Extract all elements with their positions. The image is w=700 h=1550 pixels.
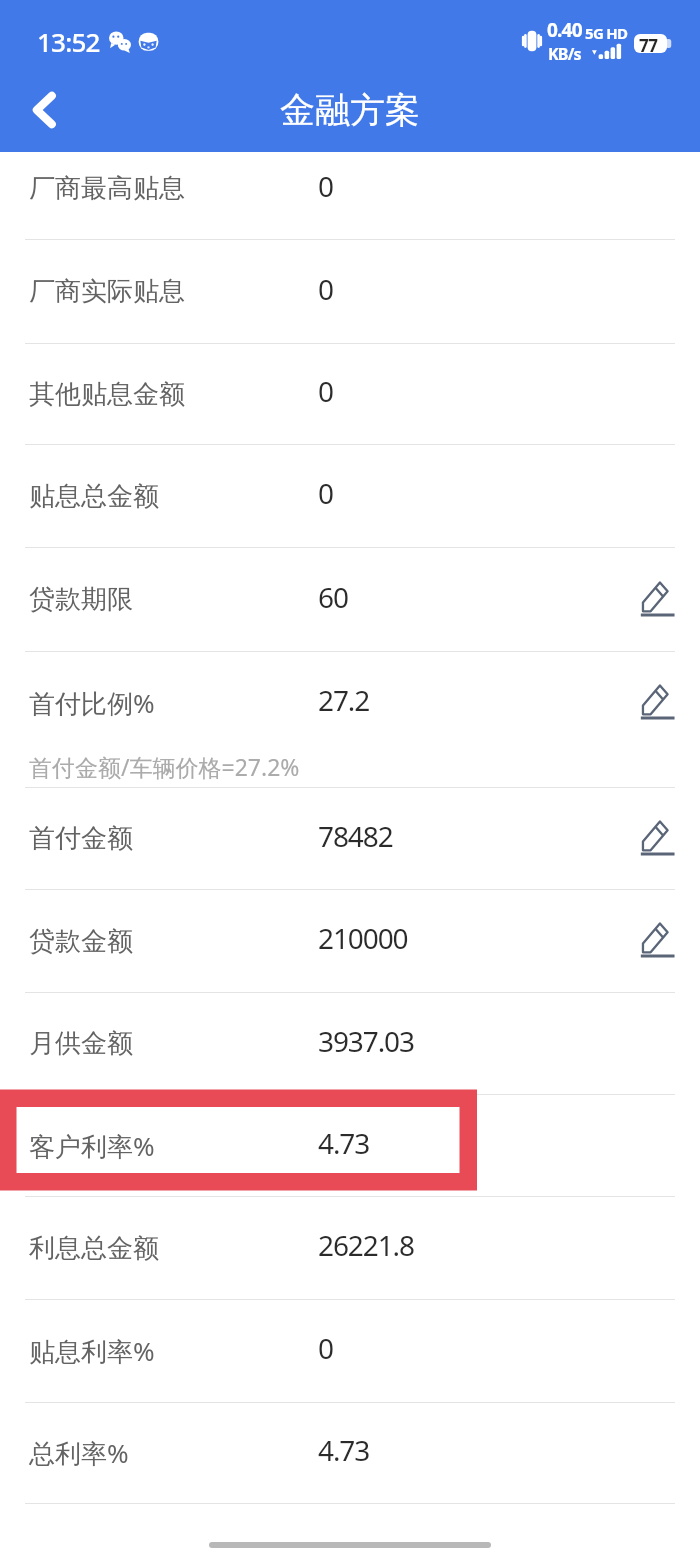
staticText: 首付金额/车辆价格=27.2% <box>29 751 300 782</box>
staticText: 厂商实际贴息 <box>29 275 185 308</box>
button[interactable]: Back <box>6 70 85 149</box>
staticText: 78482 <box>318 817 393 855</box>
staticText: 0 <box>318 167 333 205</box>
button[interactable]: Edit 首付比例% <box>623 666 693 736</box>
button[interactable]: Edit 贷款金额 <box>623 904 693 974</box>
button[interactable]: 客户利率% <box>0 1095 700 1196</box>
button[interactable]: 贴息利率% <box>0 1300 700 1402</box>
button[interactable]: 贴息总金额 <box>0 445 700 547</box>
staticText: 贴息利率% <box>29 1333 155 1369</box>
button[interactable]: 其他贴息金额 <box>0 344 700 444</box>
staticText: 利息总金额 <box>29 1232 159 1265</box>
staticText: 其他贴息金额 <box>29 378 185 411</box>
staticText: 贴息总金额 <box>29 480 159 513</box>
staticText: 金融方案 <box>280 88 420 132</box>
staticText: 首付比例% <box>29 685 155 721</box>
staticText: 月供金额 <box>29 1027 133 1060</box>
staticText: 60 <box>318 578 348 616</box>
staticText: 贷款期限 <box>29 583 133 616</box>
staticText: 210000 <box>318 919 408 957</box>
button[interactable]: 厂商最高贴息 <box>0 152 700 239</box>
staticText: 厂商最高贴息 <box>29 172 185 205</box>
button[interactable]: 利息总金额 <box>0 1197 700 1299</box>
staticText: 贷款金额 <box>29 925 133 958</box>
button[interactable]: 月供金额 <box>0 993 700 1094</box>
staticText: 3937.03 <box>318 1022 414 1060</box>
staticText: 首付金额 <box>29 822 133 855</box>
button[interactable]: 贷款期限 <box>0 548 700 651</box>
staticText: 0.40 <box>547 17 582 43</box>
staticText: 客户利率% <box>29 1128 155 1164</box>
button[interactable]: 总利率% <box>0 1403 700 1503</box>
button[interactable]: Edit 首付金额 <box>623 802 693 872</box>
staticText: 4.73 <box>318 1431 370 1469</box>
button[interactable]: 厂商实际贴息 <box>0 240 700 343</box>
button[interactable]: 贷款金额 <box>0 890 700 992</box>
staticText: 4.73 <box>318 1124 370 1162</box>
staticText: 13:52 <box>37 24 100 59</box>
staticText: 0 <box>318 372 333 410</box>
staticText: 0 <box>318 474 333 512</box>
staticText: 0 <box>318 1329 333 1367</box>
staticText: 27.2 <box>318 681 370 719</box>
staticText: 26221.8 <box>318 1226 414 1264</box>
button[interactable]: Edit 贷款期限 <box>623 563 693 633</box>
staticText: 77 <box>639 34 658 53</box>
staticText: 总利率% <box>29 1435 129 1471</box>
staticText: KB/s <box>548 43 581 65</box>
staticText: 0 <box>318 270 333 308</box>
button[interactable]: 首付比例% <box>0 652 700 787</box>
staticText: 5G HD <box>585 23 628 43</box>
button[interactable]: 首付金额 <box>0 788 700 889</box>
